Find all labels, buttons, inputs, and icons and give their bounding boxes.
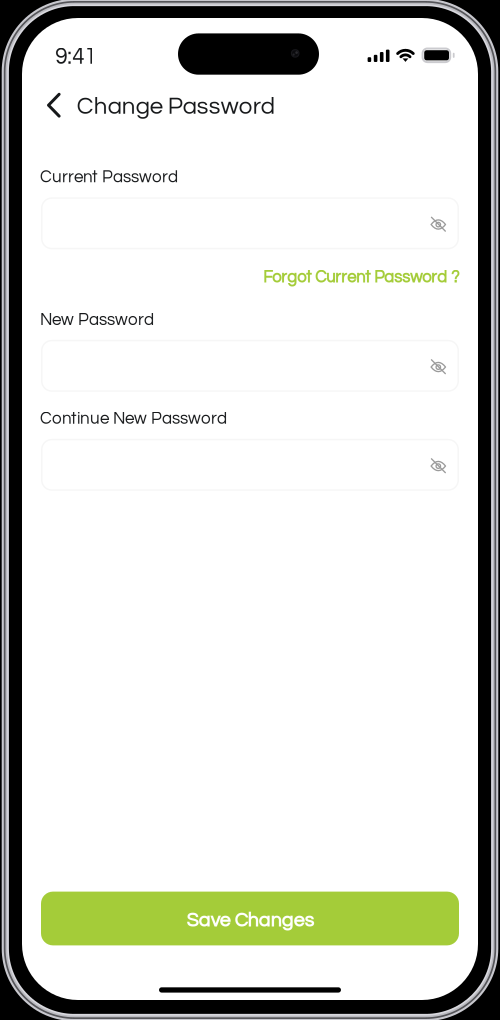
staticText: Save Changes bbox=[186, 910, 313, 931]
button[interactable]: Save Changes bbox=[41, 892, 459, 945]
button[interactable]: Forgot Current Password ? bbox=[263, 269, 459, 286]
button[interactable]: Show password bbox=[417, 197, 459, 249]
button[interactable]: Show password bbox=[417, 439, 459, 491]
staticText: New Password bbox=[40, 311, 154, 328]
staticText: Continue New Password bbox=[40, 410, 227, 427]
staticText: 9:41 bbox=[55, 45, 96, 69]
staticText: Current Password bbox=[40, 168, 178, 186]
button[interactable]: Show password bbox=[417, 340, 459, 392]
staticText: Forgot Current Password ? bbox=[263, 269, 459, 286]
staticText: Change Password bbox=[77, 94, 275, 119]
button[interactable]: Back bbox=[22, 90, 68, 121]
